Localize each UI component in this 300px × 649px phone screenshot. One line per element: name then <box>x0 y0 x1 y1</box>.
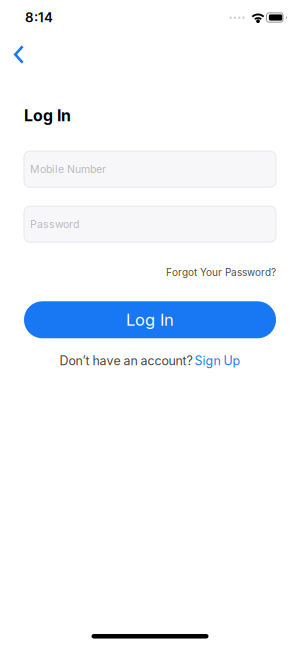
staticText: Log In <box>24 106 71 125</box>
staticText: Forgot Your Password? <box>166 266 276 278</box>
staticText: Log In <box>126 310 174 330</box>
staticText: 8:14 <box>25 9 53 25</box>
staticText: Don’t have an account? <box>59 353 192 368</box>
button[interactable]: Password <box>24 206 276 242</box>
button[interactable]: Back <box>0 35 40 70</box>
button[interactable]: Forgot Your Password? <box>166 266 276 278</box>
button[interactable]: Log In <box>24 301 276 338</box>
button[interactable]: Mobile Number <box>24 151 276 187</box>
staticText: Password <box>30 218 79 230</box>
staticText: Sign Up <box>194 353 240 368</box>
button[interactable]: Sign Up <box>194 353 240 368</box>
staticText: Mobile Number <box>30 163 106 175</box>
